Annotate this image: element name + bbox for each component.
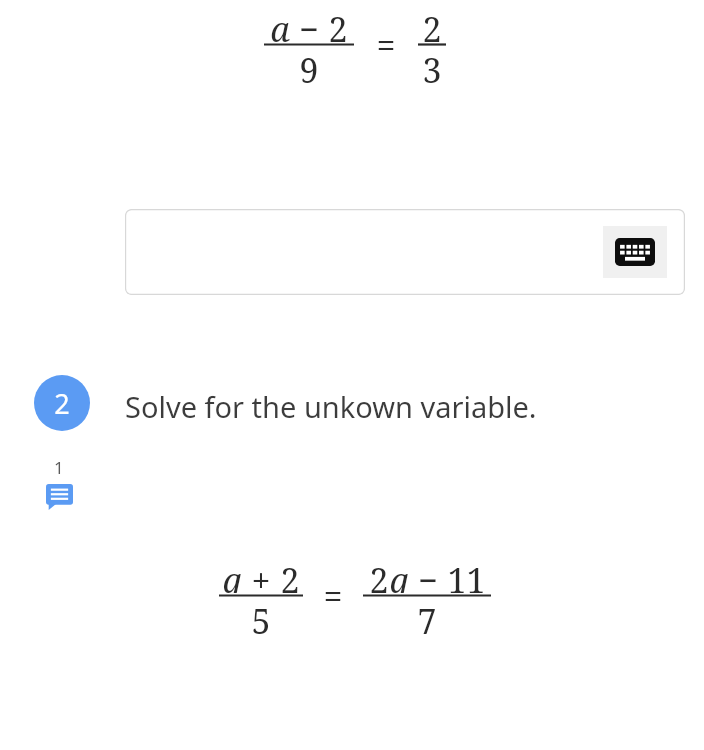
- staticText: Solve for the unkown variable.: [125, 387, 537, 426]
- button[interactable]: Comments: [46, 456, 73, 510]
- staticText: q: [389, 557, 409, 593]
- staticText: 5: [251, 598, 271, 634]
- staticText: 2: [422, 6, 442, 42]
- staticText: −: [418, 557, 438, 593]
- staticText: 2: [369, 557, 389, 593]
- staticText: =: [376, 22, 396, 68]
- staticText: 11: [447, 557, 486, 593]
- staticText: 3: [422, 47, 442, 83]
- staticText: a: [270, 6, 290, 42]
- staticText: 2: [54, 385, 70, 422]
- button[interactable]: Show keyboard: [603, 226, 667, 278]
- staticText: −: [299, 6, 319, 42]
- staticText: 1: [54, 456, 64, 479]
- button[interactable]: 2: [34, 375, 90, 431]
- staticText: +: [251, 557, 271, 593]
- staticText: 2: [280, 557, 300, 593]
- staticText: =: [323, 573, 343, 619]
- staticText: 7: [417, 598, 437, 634]
- staticText: 2: [328, 6, 348, 42]
- staticText: 9: [299, 47, 319, 83]
- button[interactable]: Show keyboard: [125, 209, 685, 295]
- staticText: q: [222, 557, 242, 593]
